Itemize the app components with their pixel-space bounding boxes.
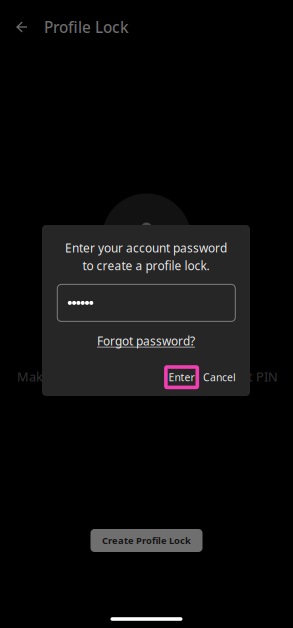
staticText: Cancel <box>203 370 236 384</box>
button[interactable]: Enter <box>166 367 197 387</box>
button[interactable]: Cancel <box>197 365 241 389</box>
button[interactable]: Create Profile Lock <box>90 529 202 552</box>
staticText: Enter <box>169 370 195 384</box>
staticText: to create a profile lock. <box>82 258 209 274</box>
button[interactable]: Back <box>6 5 40 49</box>
button[interactable]: Forgot password? <box>42 333 250 349</box>
staticText: Profile Lock <box>44 17 129 37</box>
staticText: Create Profile Lock <box>102 534 191 547</box>
staticText: Forgot password? <box>97 333 195 349</box>
staticText: Make sure you remember your account PIN <box>17 368 278 385</box>
staticText: Enter your account password <box>65 240 227 256</box>
